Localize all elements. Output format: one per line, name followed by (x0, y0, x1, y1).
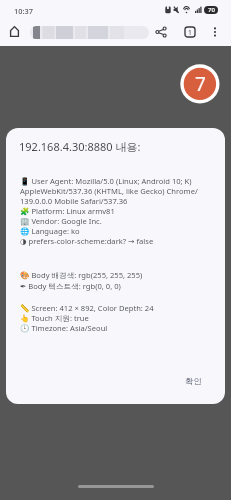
staticText: 7 (195, 71, 206, 97)
button[interactable]: Address bar (30, 26, 149, 39)
staticText: 70 (208, 6, 215, 14)
staticText: 10:37 (14, 6, 33, 16)
button[interactable]: More options (205, 22, 225, 42)
button[interactable]: Home (4, 21, 24, 41)
staticText: 🎨 Body 배경색: rgb(255, 255, 255) ✒️ Body 텍… (20, 270, 143, 291)
button[interactable]: Share (151, 22, 171, 42)
button[interactable]: 확인 (175, 369, 212, 394)
staticText: 📏 Screen: 412 × 892, Color Depth: 24 👆 T… (20, 303, 154, 333)
staticText: 확인 (185, 376, 202, 387)
button[interactable]: Tabs (180, 22, 200, 42)
staticText: 📱 User Agent: Mozilla/5.0 (Linux; Androi… (20, 176, 218, 246)
staticText: 1 (188, 28, 192, 37)
button[interactable]: Home gesture bar (78, 485, 154, 488)
staticText: 192.168.4.30:8880 내용: (19, 139, 141, 154)
